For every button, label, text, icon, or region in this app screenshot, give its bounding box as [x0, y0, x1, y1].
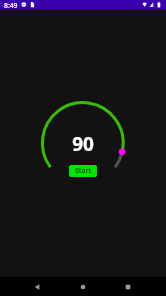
staticText: Start [75, 166, 92, 176]
button[interactable]: Home [73, 277, 93, 296]
button[interactable]: Start [69, 165, 97, 177]
button[interactable]: Recent apps [118, 277, 138, 296]
staticText: 90 [72, 131, 94, 157]
button[interactable]: Back [27, 277, 47, 296]
staticText: 8:49 [4, 1, 18, 10]
